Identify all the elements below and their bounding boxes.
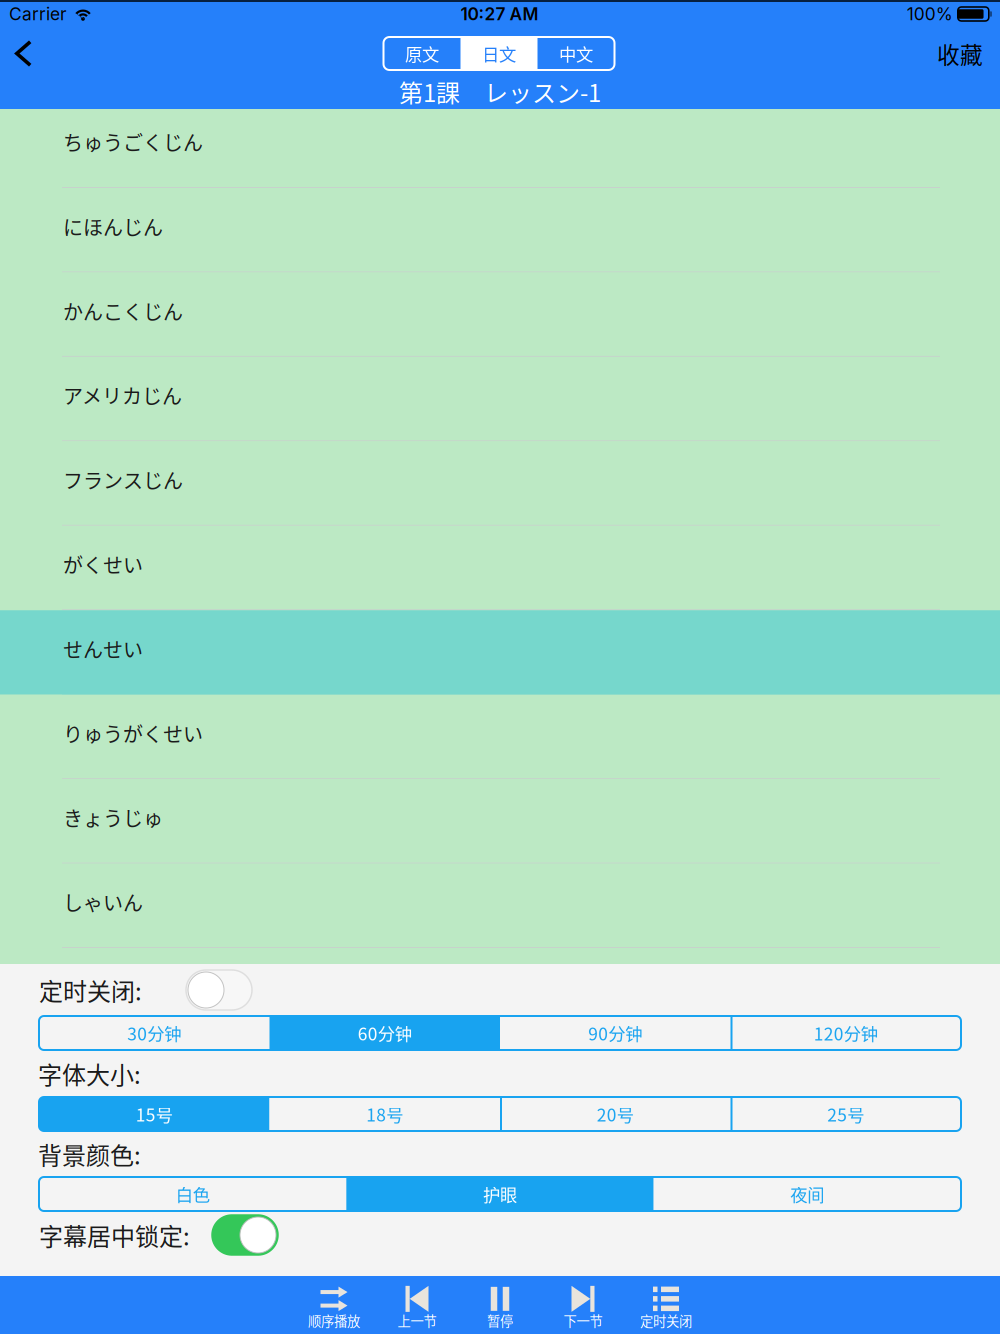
staticText: かんこくじん [63,296,183,325]
staticText: 60分钟 [358,1020,412,1046]
button[interactable]: 顺序播放 [292,1276,375,1334]
staticText: 白色 [176,1181,210,1207]
staticText: 夜间 [790,1181,824,1207]
button[interactable]: ぎんこういん [0,948,1000,1033]
staticText: ちゅうごくじん [63,127,203,156]
staticText: しゃいん [63,888,143,917]
staticText: 下一节 [563,1311,602,1330]
staticText: 定时关闭 [640,1311,692,1330]
staticText: ぎんこういん [63,972,183,1001]
button[interactable]: アメリカじん [0,357,1000,441]
button[interactable]: 20号 [500,1097,730,1131]
staticText: 120分钟 [814,1020,878,1046]
button[interactable]: 白色 [39,1177,346,1211]
button[interactable]: 夜间 [654,1177,961,1211]
staticText: 上一节 [397,1311,436,1330]
button[interactable]: Back [0,28,56,74]
staticText: 暂停 [487,1311,513,1330]
button[interactable]: 定时关闭 [624,1276,707,1334]
button[interactable]: Toggle off [186,970,252,1010]
staticText: がくせい [63,550,143,579]
button[interactable]: ちゅうごくじん [0,109,1000,188]
button[interactable]: きょうじゅ [0,779,1000,864]
staticText: アメリカじん [63,381,182,410]
staticText: 25号 [827,1101,864,1127]
button[interactable]: 90分钟 [500,1016,730,1050]
button[interactable]: 中文 [537,37,614,70]
button[interactable]: しゃいん [0,864,1000,948]
button[interactable]: にほんじん [0,188,1000,272]
button[interactable]: フランスじん [0,441,1000,526]
staticText: 30分钟 [127,1020,181,1046]
button[interactable]: 25号 [730,1097,961,1131]
button[interactable]: 上一节 [375,1276,458,1334]
staticText: 日文 [482,41,516,66]
staticText: 20号 [597,1101,634,1127]
button[interactable]: 下一节 [541,1276,624,1334]
staticText: 15号 [136,1101,173,1127]
staticText: せんせい [63,634,143,663]
staticText: にほんじん [63,212,163,241]
staticText: 顺序播放 [308,1311,360,1330]
button[interactable]: Toggle on [212,1215,278,1255]
staticText: 100% [907,3,953,24]
staticText: 18号 [366,1101,403,1127]
button[interactable]: 暂停 [458,1276,541,1334]
button[interactable]: 18号 [269,1097,500,1131]
staticText: きょうじゅ [63,803,163,832]
button[interactable]: りゅうがくせい [0,695,1000,779]
staticText: りゅうがくせい [63,719,203,748]
staticText: フランスじん [63,465,183,494]
staticText: 定时关闭: [39,973,142,1007]
button[interactable]: 原文 [383,37,460,70]
staticText: 字体大小: [38,1056,141,1091]
staticText: 护眼 [483,1181,517,1207]
button[interactable]: 30分钟 [39,1016,269,1050]
staticText: 收藏 [937,37,983,70]
button[interactable]: 15号 [39,1097,269,1131]
staticText: 背景颜色: [38,1137,141,1171]
button[interactable]: 收藏 [937,28,1000,74]
button[interactable]: かんこくじん [0,272,1000,357]
staticText: 第1課 レッスン-1 [399,74,601,109]
button[interactable]: せんせい [0,610,1000,695]
button[interactable]: 日文 [460,37,537,70]
staticText: 原文 [405,41,439,66]
button[interactable]: 60分钟 [269,1016,500,1050]
button[interactable]: 护眼 [346,1177,654,1211]
button[interactable]: がくせい [0,526,1000,610]
staticText: 字幕居中锁定: [39,1218,190,1252]
staticText: 90分钟 [588,1020,642,1046]
staticText: Carrier [9,3,67,24]
staticText: 中文 [559,41,593,66]
button[interactable]: 120分钟 [730,1016,961,1050]
staticText: 10:27 AM [460,3,538,24]
